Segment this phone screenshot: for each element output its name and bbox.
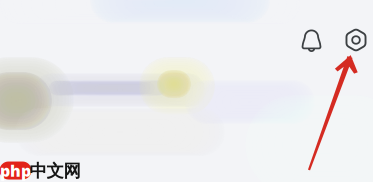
button[interactable]: Settings [336, 20, 373, 60]
staticText: 中文网 [29, 160, 80, 182]
staticText: php [0, 160, 31, 181]
button[interactable]: Notifications [291, 20, 331, 60]
